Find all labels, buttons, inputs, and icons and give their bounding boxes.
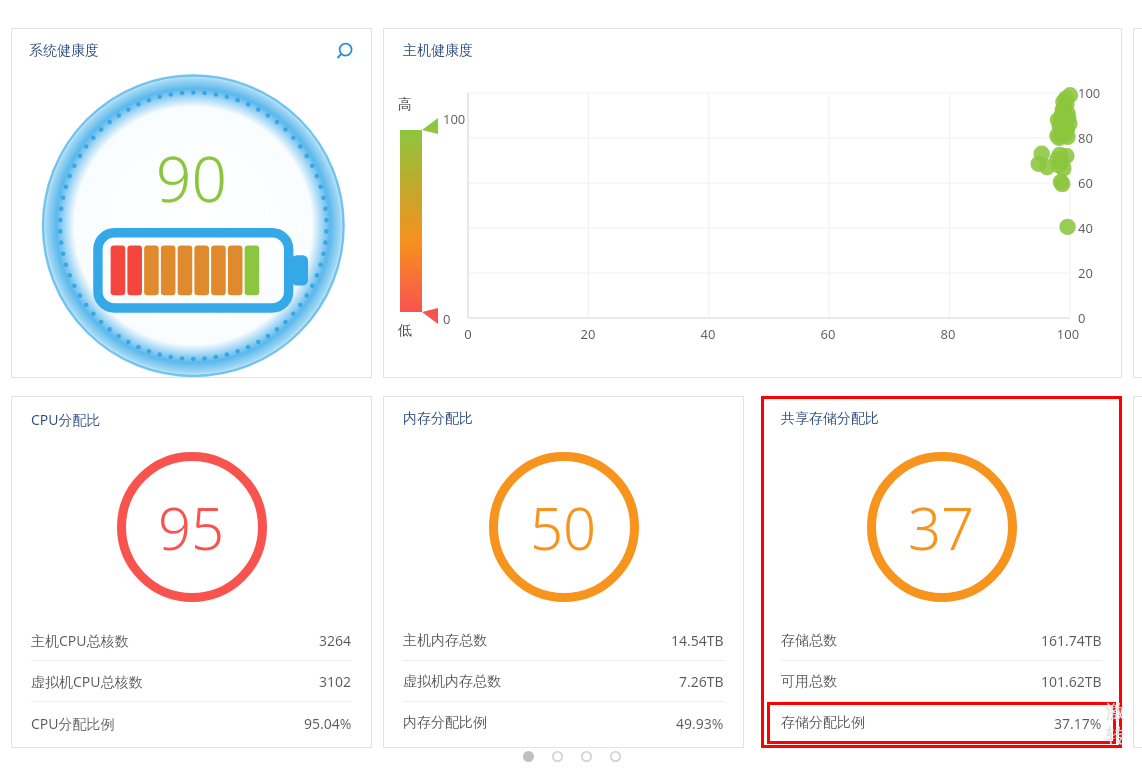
staticText: 0 — [443, 310, 451, 328]
staticText: 50 — [530, 488, 597, 567]
staticText: 主机CPU总核数 — [31, 631, 129, 650]
staticText: 20 — [1078, 264, 1093, 282]
staticText: 40 — [696, 325, 720, 343]
staticText: 14.54TB — [671, 631, 724, 650]
staticText: 80 — [1078, 129, 1093, 147]
staticText: 低 — [398, 322, 412, 340]
staticText: 虚拟机内存总数 — [403, 673, 501, 691]
staticText: CPU分配比 — [31, 410, 101, 429]
staticText: 存储总数 — [781, 632, 837, 650]
staticText: 100 — [443, 110, 466, 128]
button[interactable]: 存储分配比例 — [781, 702, 1102, 744]
button[interactable]: 主机CPU总核数 — [31, 620, 352, 661]
staticText: 49.93% — [676, 714, 724, 733]
staticText: 37.17% — [1054, 714, 1102, 733]
staticText: 161.74TB — [1041, 631, 1102, 650]
button[interactable]: 虚拟机CPU总核数 — [31, 661, 352, 702]
staticText: 37 — [908, 488, 975, 567]
staticText: 内存分配比 — [403, 410, 473, 428]
staticText: 主机健康度 — [403, 42, 473, 60]
button[interactable] — [549, 748, 565, 764]
button[interactable]: 主机健康度 — [383, 28, 1122, 378]
staticText: 内存分配比例 — [403, 714, 487, 732]
button[interactable]: 可用总数 — [781, 661, 1102, 702]
staticText: 虚拟机CPU总核数 — [31, 672, 143, 691]
staticText: 可用总数 — [781, 673, 837, 691]
staticText: 3102 — [319, 672, 352, 691]
staticText: 存储分配比例 — [781, 714, 865, 732]
staticText: 7.26TB — [679, 672, 724, 691]
button[interactable]: Search — [330, 38, 358, 66]
staticText: 40 — [1078, 219, 1093, 237]
staticText: 90 — [156, 136, 227, 220]
button[interactable]: CPU分配比例 — [31, 702, 352, 744]
staticText: 0 — [1078, 309, 1086, 327]
staticText: 0 — [456, 325, 480, 343]
button[interactable]: 系统健康度 — [11, 28, 372, 378]
button[interactable]: 存储总数 — [781, 620, 1102, 661]
staticText: 101.62TB — [1041, 672, 1102, 691]
staticText: 20 — [576, 325, 600, 343]
staticText: 100 — [1078, 84, 1101, 102]
staticText: 95 — [158, 488, 225, 567]
staticText: 95.04% — [304, 714, 352, 733]
staticText: 转 — [1106, 724, 1125, 748]
staticText: 60 — [816, 325, 840, 343]
staticText: CPU分配比例 — [31, 714, 115, 733]
button[interactable] — [607, 748, 623, 764]
staticText: 60 — [1078, 174, 1093, 192]
staticText: 系统健康度 — [29, 42, 99, 60]
staticText: 3264 — [319, 631, 352, 650]
button[interactable]: CPU分配比 — [11, 396, 372, 748]
button[interactable]: 虚拟机内存总数 — [403, 661, 724, 702]
staticText: 高 — [398, 96, 412, 114]
button[interactable]: 内存分配比例 — [403, 702, 724, 744]
staticText: 100 — [1056, 325, 1080, 343]
staticText: 80 — [936, 325, 960, 343]
button[interactable] — [578, 748, 594, 764]
button[interactable]: 内存分配比 — [383, 396, 744, 748]
button[interactable]: 主机内存总数 — [403, 620, 724, 661]
button[interactable] — [520, 748, 536, 764]
staticText: 共享存储分配比 — [781, 410, 879, 428]
staticText: 主机内存总数 — [403, 632, 487, 650]
staticText: 激 — [1106, 700, 1125, 724]
